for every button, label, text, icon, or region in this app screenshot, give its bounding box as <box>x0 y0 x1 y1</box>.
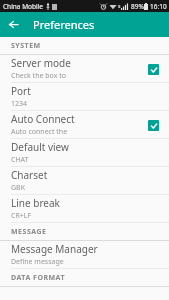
button[interactable]: Server mode <box>0 55 169 82</box>
button[interactable]: Line break <box>0 195 169 222</box>
staticText: Line break <box>11 196 60 210</box>
staticText: SYSTEM <box>11 41 41 51</box>
staticText: 16:10 <box>150 2 167 11</box>
button[interactable]: Port <box>0 83 169 110</box>
button[interactable]: Charset <box>0 167 169 194</box>
staticText: Default view <box>11 140 69 154</box>
button[interactable]: Auto Connect <box>0 111 169 138</box>
staticText: Port <box>11 84 31 98</box>
staticText: Check the box to listen port <box>11 71 78 81</box>
staticText: Define message <box>11 257 64 267</box>
button[interactable]: Message Manager <box>0 241 169 268</box>
staticText: 1234 <box>11 99 28 109</box>
staticText: GBK <box>11 183 25 193</box>
staticText: Server mode <box>11 56 71 70</box>
staticText: MESSAGE <box>11 227 47 237</box>
staticText: Auto Connect <box>11 112 75 126</box>
button[interactable]: Auto Connect checkbox <box>146 118 160 132</box>
staticText: Auto connect the last device <box>11 127 78 137</box>
staticText: CR+LF <box>11 211 32 221</box>
button[interactable]: Server mode checkbox <box>146 62 160 76</box>
staticText: 89% <box>131 2 144 11</box>
staticText: China Mobile <box>3 2 44 11</box>
staticText: DATA FORMAT <box>11 273 66 283</box>
button[interactable]: Default view <box>0 139 169 166</box>
staticText: s <box>118 3 121 10</box>
staticText: Charset <box>11 168 48 182</box>
staticText: Preferences <box>33 17 95 32</box>
staticText: Message Manager <box>11 242 98 256</box>
button[interactable]: Back <box>0 12 26 37</box>
staticText: CHAT <box>11 155 29 165</box>
